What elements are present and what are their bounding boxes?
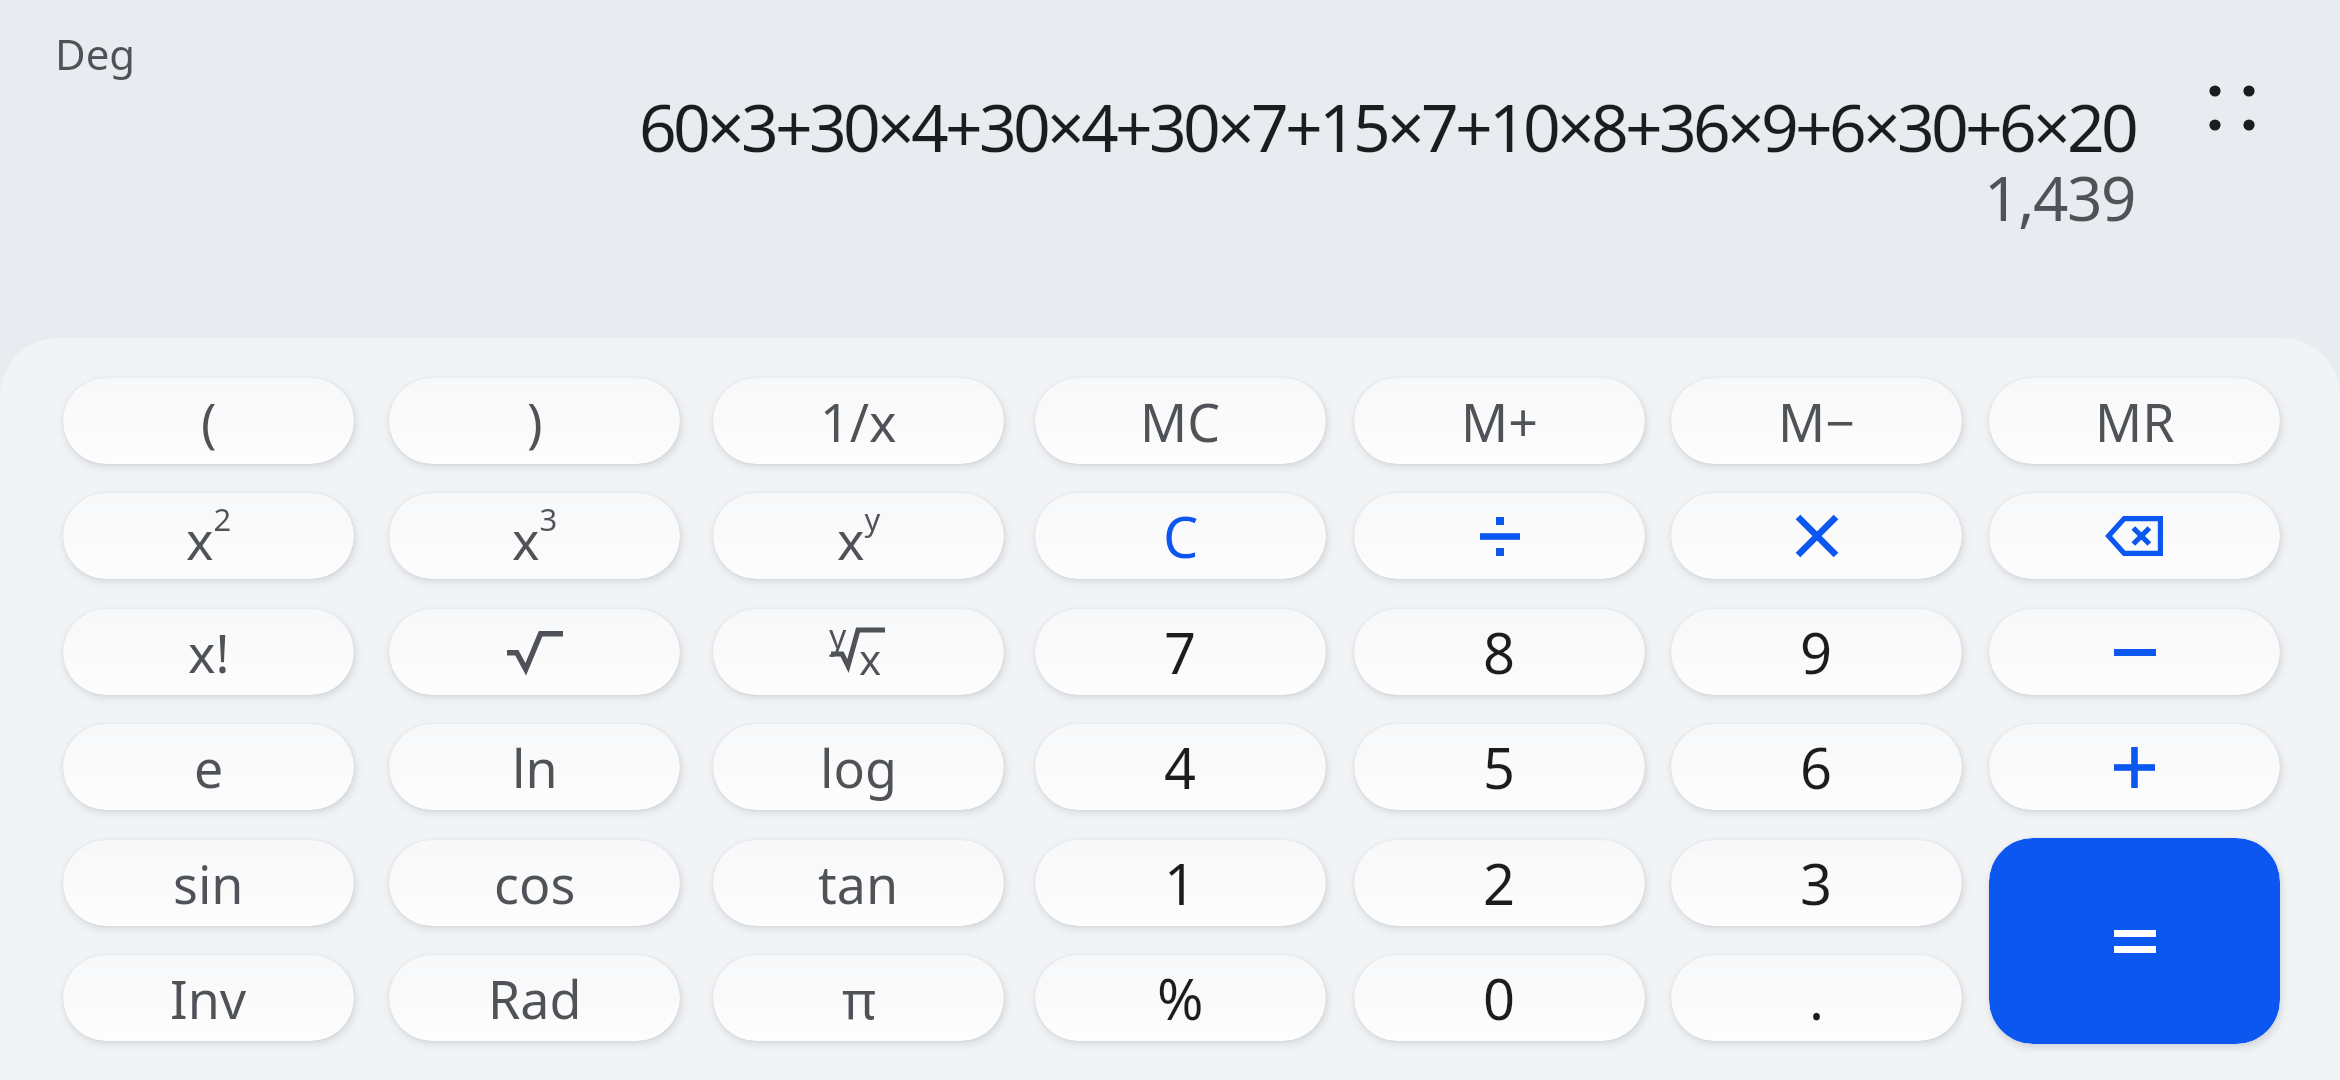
staticText: 0 xyxy=(1483,960,1516,1036)
button[interactable]: 7 xyxy=(1035,609,1326,695)
button[interactable]: log xyxy=(713,724,1004,810)
staticText: 3 xyxy=(1800,845,1833,921)
button[interactable]: 6 xyxy=(1671,724,1962,810)
staticText: M+ xyxy=(1461,386,1538,457)
staticText: cos xyxy=(494,848,576,919)
staticText: y xyxy=(829,613,847,659)
staticText: 2 xyxy=(1483,845,1516,921)
staticText: Deg xyxy=(55,25,136,82)
button[interactable]: 5 xyxy=(1354,724,1645,810)
staticText: 60×3+30×4+30×4+30×7+15×7+10×8+36×9+6×30+… xyxy=(0,81,2135,171)
button[interactable]: 3 xyxy=(1671,840,1962,926)
button[interactable]: tan xyxy=(713,840,1004,926)
button[interactable]: Equals xyxy=(1989,838,2280,1044)
button[interactable]: M+ xyxy=(1354,378,1645,464)
staticText: ) xyxy=(527,386,543,457)
staticText: sin xyxy=(173,848,244,919)
button[interactable]: MR xyxy=(1989,378,2280,464)
button[interactable]: x2 xyxy=(63,493,354,579)
button[interactable]: MC xyxy=(1035,378,1326,464)
staticText: 9 xyxy=(1800,614,1833,690)
staticText: xy xyxy=(837,498,881,575)
button[interactable]: . xyxy=(1671,955,1962,1041)
button[interactable]: Minus xyxy=(1989,609,2280,695)
button[interactable]: Backspace xyxy=(1989,493,2280,579)
button[interactable]: Divide xyxy=(1354,493,1645,579)
button[interactable]: More options xyxy=(2195,71,2271,147)
staticText: e xyxy=(194,732,224,803)
button[interactable]: ln xyxy=(389,724,680,810)
staticText: % xyxy=(1157,960,1204,1036)
button[interactable]: π xyxy=(713,955,1004,1041)
staticText: 1/x xyxy=(820,386,897,457)
staticText: 7 xyxy=(1164,614,1197,690)
button[interactable]: 1 xyxy=(1035,840,1326,926)
staticText: x xyxy=(859,630,882,676)
staticText: MC xyxy=(1140,386,1221,457)
staticText: 6 xyxy=(1800,729,1833,805)
staticText: x2 xyxy=(186,498,232,575)
button[interactable]: xy xyxy=(713,493,1004,579)
staticText: . xyxy=(1809,960,1825,1036)
staticText: Inv xyxy=(170,963,247,1034)
button[interactable]: x3 xyxy=(389,493,680,579)
button[interactable]: cos xyxy=(389,840,680,926)
button[interactable]: 9 xyxy=(1671,609,1962,695)
staticText: 8 xyxy=(1483,614,1516,690)
staticText: x! xyxy=(188,617,230,688)
button[interactable]: Nth root xyxy=(713,609,1004,695)
button[interactable]: x! xyxy=(63,609,354,695)
staticText: tan xyxy=(818,848,899,919)
button[interactable]: C xyxy=(1035,493,1326,579)
button[interactable]: Plus xyxy=(1989,724,2280,810)
staticText: ln xyxy=(512,732,558,803)
staticText: 1,439 xyxy=(0,155,2135,239)
button[interactable]: % xyxy=(1035,955,1326,1041)
staticText: 4 xyxy=(1164,729,1197,805)
button[interactable]: Rad xyxy=(389,955,680,1041)
staticText: log xyxy=(820,732,897,803)
staticText: MR xyxy=(2095,386,2175,457)
button[interactable]: 4 xyxy=(1035,724,1326,810)
button[interactable]: Multiply xyxy=(1671,493,1962,579)
button[interactable]: ( xyxy=(63,378,354,464)
staticText: x3 xyxy=(512,498,558,575)
button[interactable]: Square root xyxy=(389,609,680,695)
button[interactable]: ) xyxy=(389,378,680,464)
button[interactable]: 0 xyxy=(1354,955,1645,1041)
staticText: C xyxy=(1163,498,1199,574)
button[interactable]: 8 xyxy=(1354,609,1645,695)
staticText: ( xyxy=(201,386,217,457)
staticText: π xyxy=(842,963,876,1034)
staticText: 5 xyxy=(1483,729,1516,805)
button[interactable]: e xyxy=(63,724,354,810)
button[interactable]: 1/x xyxy=(713,378,1004,464)
button[interactable]: 2 xyxy=(1354,840,1645,926)
button[interactable]: sin xyxy=(63,840,354,926)
button[interactable]: M− xyxy=(1671,378,1962,464)
staticText: Rad xyxy=(488,963,582,1034)
staticText: 1 xyxy=(1164,845,1197,921)
staticText: M− xyxy=(1778,386,1855,457)
button[interactable]: Inv xyxy=(63,955,354,1041)
